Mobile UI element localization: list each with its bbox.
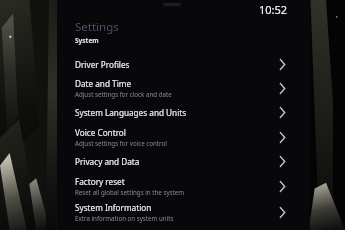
staticText: Driver Profiles	[75, 59, 130, 70]
staticText: Adjust settings for voice control	[75, 139, 167, 147]
staticText: Privacy and Data	[75, 156, 140, 167]
button[interactable]: System Languages and Units	[57, 101, 310, 124]
staticText: Settings	[75, 19, 119, 35]
staticText: Factory reset	[75, 176, 125, 187]
staticText: Extra information on system units	[75, 214, 174, 222]
staticText: Reset all global settings in the system	[75, 188, 185, 196]
button[interactable]: Privacy and Data	[57, 150, 310, 173]
button[interactable]: Factory reset	[57, 173, 310, 199]
button[interactable]: System Information	[57, 199, 310, 225]
button[interactable]: Driver Profiles	[57, 54, 310, 75]
staticText: System Information	[75, 202, 152, 213]
staticText: System	[75, 36, 99, 45]
staticText: Date and Time	[75, 78, 132, 89]
staticText: Adjust settings for clock and date	[75, 90, 172, 98]
button[interactable]: Date and Time	[57, 75, 310, 101]
button[interactable]: Voice Control	[57, 124, 310, 150]
staticText: Voice Control	[75, 127, 126, 138]
staticText: 10:52	[259, 2, 288, 17]
staticText: System Languages and Units	[75, 107, 187, 118]
